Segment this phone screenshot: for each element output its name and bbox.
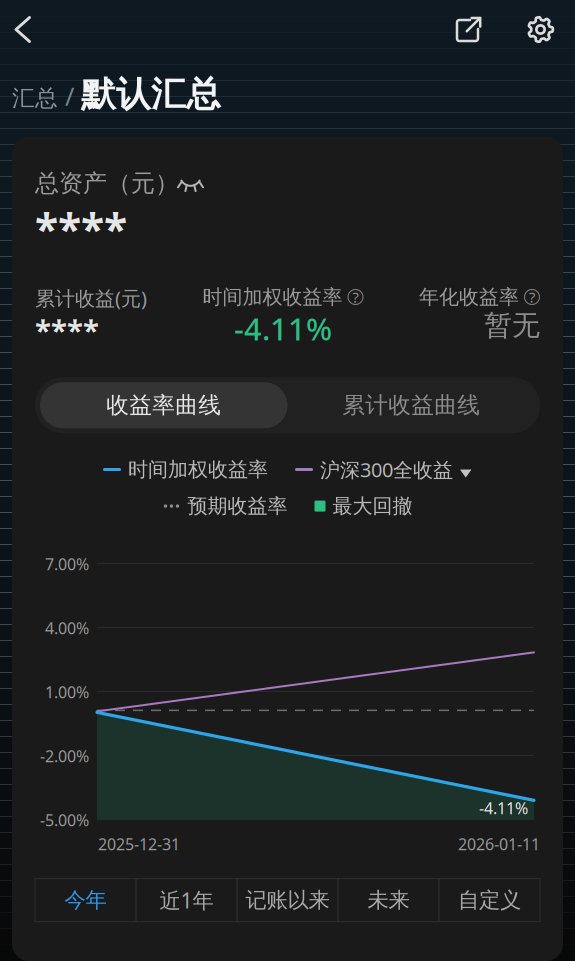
- button[interactable]: Share: [441, 12, 496, 47]
- staticText: -4.11%: [234, 308, 332, 349]
- staticText: ****: [35, 200, 127, 257]
- staticText: 近1年: [159, 886, 213, 914]
- button[interactable]: 自定义: [439, 879, 540, 922]
- staticText: -2.00%: [40, 745, 89, 767]
- staticText: 收益率曲线: [106, 391, 221, 419]
- button[interactable]: Hide balance: [177, 175, 204, 192]
- staticText: ****: [35, 310, 99, 349]
- staticText: 总资产（元）: [35, 169, 179, 198]
- staticText: 最大回撤: [332, 494, 412, 518]
- button[interactable]: 今年: [35, 879, 136, 922]
- staticText: 年化收益率: [419, 285, 519, 309]
- staticText: 累计收益曲线: [342, 391, 480, 419]
- staticText: 7.00%: [45, 553, 89, 575]
- staticText: 2026-01-11: [458, 833, 540, 855]
- staticText: -4.11%: [479, 797, 528, 819]
- staticText: /: [65, 79, 74, 113]
- staticText: -5.00%: [40, 809, 89, 831]
- staticText: 默认汇总: [81, 73, 221, 116]
- button[interactable]: Settings: [496, 11, 561, 48]
- button[interactable]: 累计收益曲线: [287, 382, 535, 428]
- button[interactable]: 记账以来: [237, 879, 338, 922]
- staticText: 暂无: [484, 308, 540, 343]
- staticText: 4.00%: [45, 617, 89, 639]
- button[interactable]: 未来: [338, 879, 439, 922]
- button[interactable]: 收益率曲线: [40, 382, 287, 428]
- staticText: 2025-12-31: [98, 833, 180, 855]
- button[interactable]: 近1年: [136, 879, 237, 922]
- staticText: 自定义: [458, 887, 521, 913]
- staticText: ?: [352, 287, 358, 307]
- staticText: 今年: [64, 887, 106, 913]
- staticText: 时间加权收益率: [128, 457, 268, 482]
- staticText: 汇总: [12, 84, 58, 112]
- staticText: 预期收益率: [187, 494, 287, 518]
- staticText: 时间加权收益率: [202, 285, 342, 309]
- staticText: 1.00%: [45, 681, 89, 703]
- staticText: 沪深300全收益: [320, 456, 453, 483]
- button[interactable]: Back: [0, 12, 43, 47]
- button[interactable]: Change benchmark: [460, 459, 472, 479]
- staticText: 记账以来: [245, 887, 329, 913]
- staticText: 累计收益(元): [35, 285, 147, 311]
- staticText: 未来: [367, 887, 409, 913]
- button[interactable]: 汇总: [12, 84, 58, 112]
- staticText: ?: [529, 287, 535, 307]
